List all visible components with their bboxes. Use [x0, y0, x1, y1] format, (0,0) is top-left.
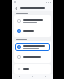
button[interactable]	[15, 17, 50, 25]
button[interactable]	[15, 43, 50, 51]
button[interactable]: Back	[14, 6, 18, 10]
button[interactable]: Recents	[44, 75, 47, 78]
button[interactable]	[15, 53, 50, 61]
button[interactable]: Home	[31, 75, 34, 78]
button[interactable]	[15, 66, 50, 72]
button[interactable]: Back	[18, 75, 21, 78]
button[interactable]	[15, 27, 50, 35]
